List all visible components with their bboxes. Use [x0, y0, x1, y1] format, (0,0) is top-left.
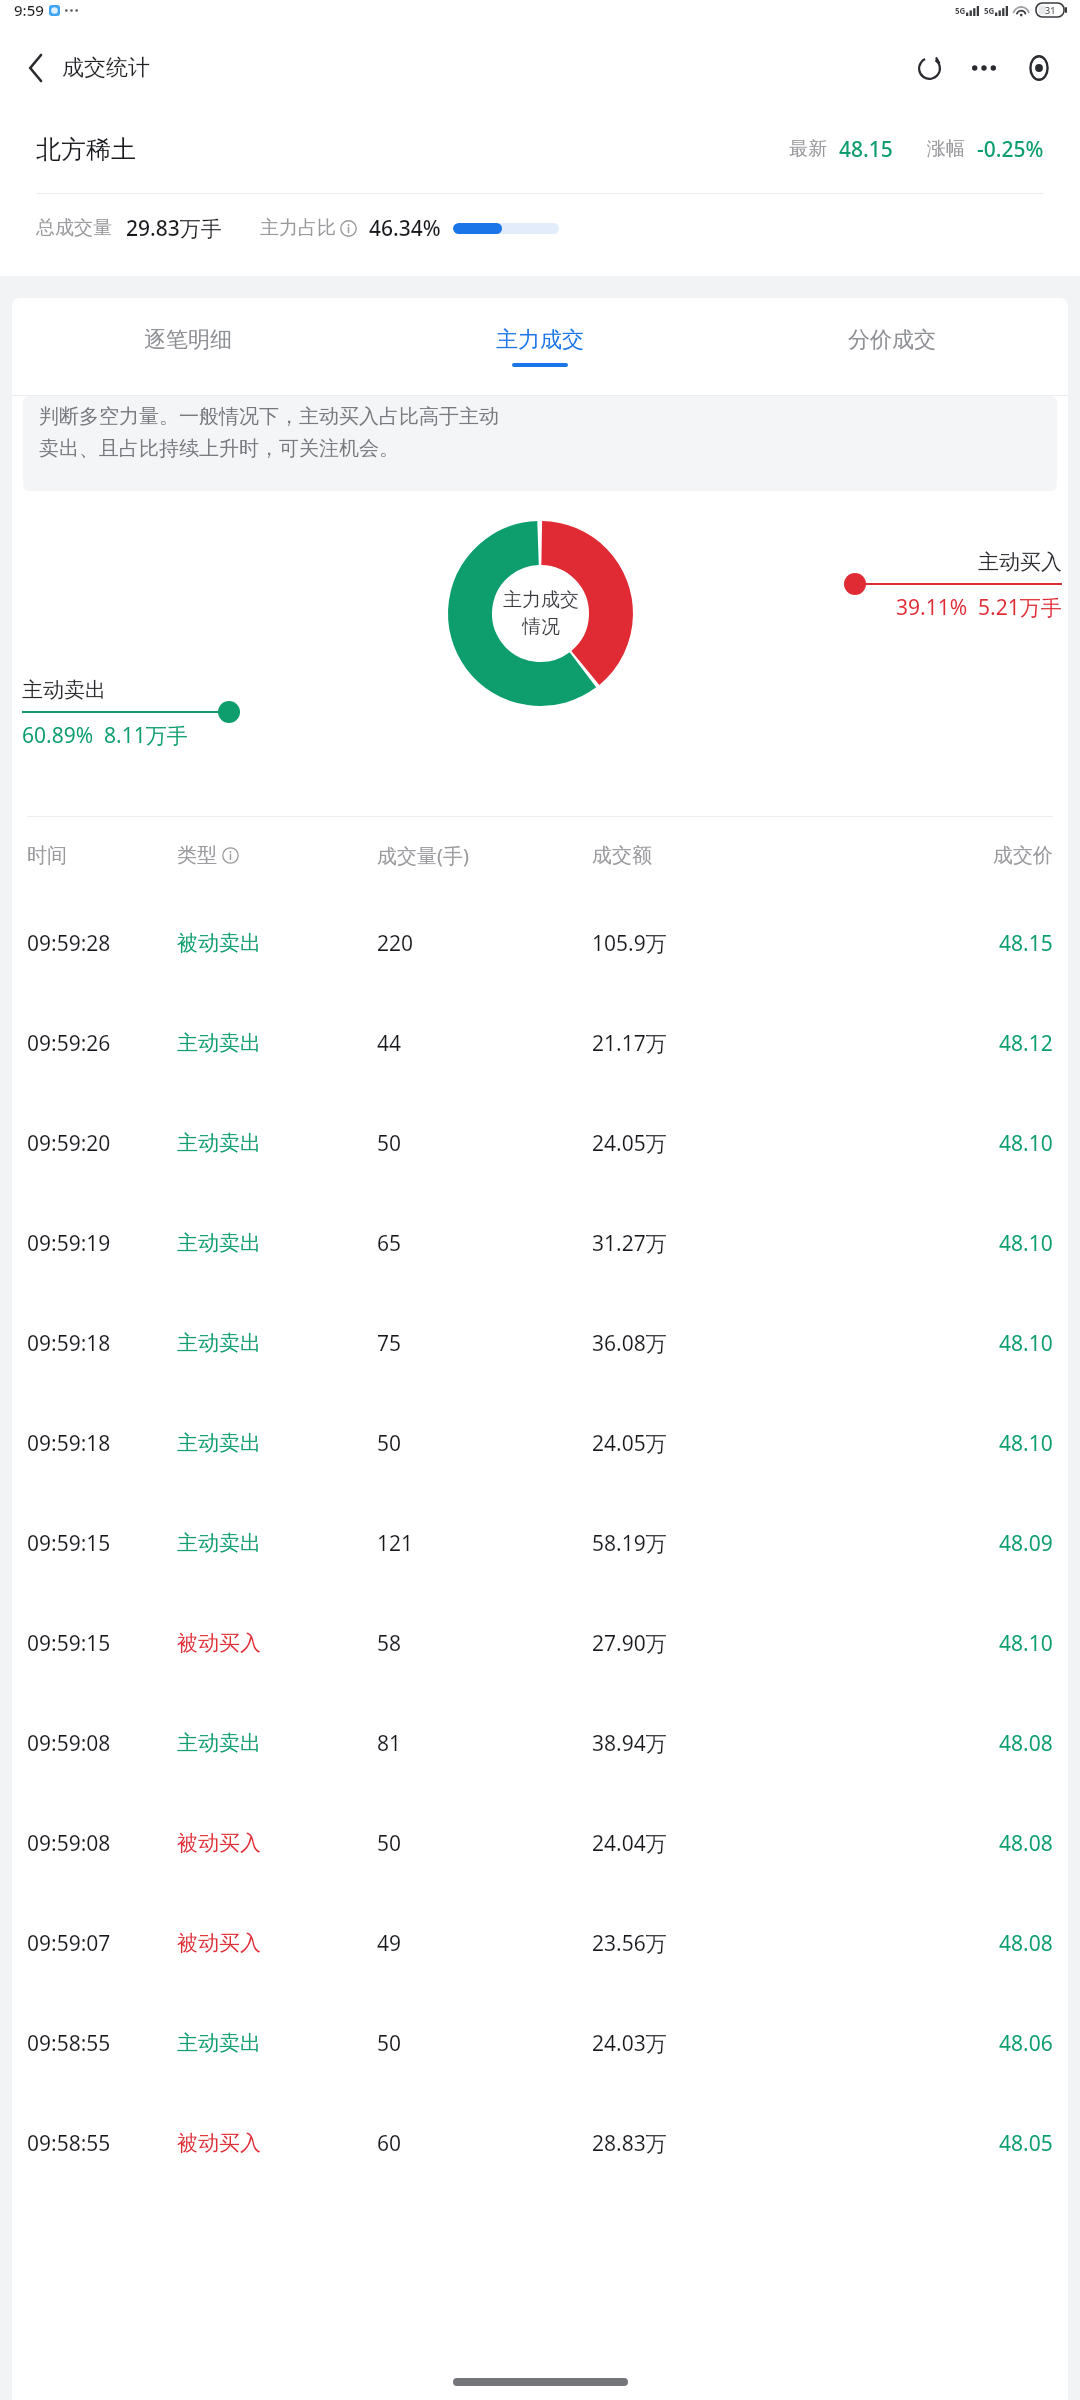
button[interactable]: Refresh: [908, 47, 950, 89]
staticText: 38.94万: [592, 1729, 667, 1758]
staticText: 50: [377, 2029, 402, 2058]
staticText: 主动卖出: [177, 1430, 261, 1456]
staticText: 39.11% 5.21万手: [896, 593, 1062, 622]
staticText: 时间: [27, 843, 67, 868]
staticText: 成交价: [993, 843, 1053, 868]
button[interactable]: 09:59:18: [12, 1393, 1068, 1493]
staticText: 09:59:15: [27, 1529, 111, 1558]
staticText: 105.9万: [592, 929, 667, 958]
staticText: 09:58:55: [27, 2129, 111, 2158]
staticText: 121: [377, 1529, 414, 1558]
staticText: 9:59: [14, 0, 44, 20]
button[interactable]: 09:59:15: [12, 1593, 1068, 1693]
staticText: 主动卖出: [177, 1330, 261, 1356]
button[interactable]: More options: [964, 48, 1004, 88]
staticText: 50: [377, 1829, 402, 1858]
button[interactable]: 09:59:20: [12, 1093, 1068, 1193]
staticText: 被动买入: [177, 1930, 261, 1956]
button[interactable]: 09:58:55: [12, 2093, 1068, 2193]
staticText: 北方稀土: [36, 134, 136, 165]
staticText: 09:59:26: [27, 1029, 111, 1058]
button[interactable]: 09:59:08: [12, 1693, 1068, 1793]
button[interactable]: 09:59:07: [12, 1893, 1068, 1993]
staticText: 09:58:55: [27, 2029, 111, 2058]
staticText: 48.10: [999, 1329, 1053, 1358]
button[interactable]: 主力成交: [364, 298, 716, 395]
button[interactable]: 09:59:19: [12, 1193, 1068, 1293]
staticText: 48.12: [999, 1029, 1053, 1058]
staticText: 75: [377, 1329, 402, 1358]
staticText: 81: [377, 1729, 402, 1758]
staticText: 判断多空力量。一般情况下，主动买入占比高于主动: [39, 404, 499, 429]
staticText: 48.06: [999, 2029, 1053, 2058]
staticText: 24.03万: [592, 2029, 667, 2058]
staticText: 58.19万: [592, 1529, 667, 1558]
staticText: 逐笔明细: [144, 326, 232, 354]
staticText: 48.08: [999, 1929, 1053, 1958]
button[interactable]: Back: [14, 46, 58, 90]
staticText: 48.10: [999, 1129, 1053, 1158]
staticText: 09:59:08: [27, 1829, 111, 1858]
staticText: 主力成交: [496, 326, 584, 354]
button[interactable]: 09:59:08: [12, 1793, 1068, 1893]
button[interactable]: 09:59:18: [12, 1293, 1068, 1393]
staticText: 29.83万手: [126, 214, 222, 243]
staticText: 被动买入: [177, 2130, 261, 2156]
staticText: 情况: [522, 615, 560, 639]
button[interactable]: 分价成交: [716, 298, 1068, 395]
staticText: 09:59:18: [27, 1329, 111, 1358]
staticText: 成交统计: [62, 54, 150, 82]
staticText: 27.90万: [592, 1629, 667, 1658]
staticText: 09:59:15: [27, 1629, 111, 1658]
staticText: 24.05万: [592, 1129, 667, 1158]
button[interactable]: 09:59:26: [12, 993, 1068, 1093]
staticText: 主力占比: [260, 216, 336, 240]
staticText: 46.34%: [369, 214, 441, 243]
staticText: 主动卖出: [177, 1530, 261, 1556]
staticText: 50: [377, 1429, 402, 1458]
staticText: 09:59:08: [27, 1729, 111, 1758]
staticText: 主动卖出: [177, 1230, 261, 1256]
staticText: 44: [377, 1029, 402, 1058]
staticText: 60: [377, 2129, 402, 2158]
staticText: 09:59:18: [27, 1429, 111, 1458]
staticText: 48.08: [999, 1729, 1053, 1758]
button[interactable]: 09:58:55: [12, 1993, 1068, 2093]
staticText: 涨幅: [927, 137, 965, 161]
staticText: 主动卖出: [177, 1030, 261, 1056]
staticText: 最新: [789, 137, 827, 161]
staticText: 48.15: [839, 135, 893, 164]
staticText: 36.08万: [592, 1329, 667, 1358]
staticText: 分价成交: [848, 326, 936, 354]
staticText: 09:59:28: [27, 929, 111, 958]
staticText: 09:59:07: [27, 1929, 111, 1958]
staticText: 主动卖出: [177, 1730, 261, 1756]
staticText: 总成交量: [36, 216, 112, 240]
staticText: 成交量(手): [377, 842, 469, 869]
staticText: 65: [377, 1229, 402, 1258]
staticText: 主动买入: [978, 549, 1062, 575]
staticText: 5G: [984, 5, 995, 16]
staticText: 48.10: [999, 1629, 1053, 1658]
button[interactable]: 09:59:15: [12, 1493, 1068, 1593]
button[interactable]: 09:59:28: [12, 893, 1068, 993]
staticText: 被动卖出: [177, 930, 261, 956]
staticText: 50: [377, 1129, 402, 1158]
staticText: 49: [377, 1929, 402, 1958]
staticText: 48.15: [999, 929, 1053, 958]
staticText: 48.10: [999, 1429, 1053, 1458]
staticText: 24.05万: [592, 1429, 667, 1458]
staticText: 5G: [955, 5, 966, 16]
button[interactable]: 逐笔明细: [12, 298, 364, 395]
staticText: 31: [1045, 4, 1056, 16]
staticText: 60.89% 8.11万手: [22, 721, 188, 750]
staticText: 09:59:20: [27, 1129, 111, 1158]
staticText: 24.04万: [592, 1829, 667, 1858]
staticText: 主动卖出: [177, 2030, 261, 2056]
staticText: 主动卖出: [177, 1130, 261, 1156]
staticText: 48.09: [999, 1529, 1053, 1558]
staticText: -0.25%: [977, 135, 1044, 164]
button[interactable]: Record: [1018, 47, 1060, 89]
staticText: 21.17万: [592, 1029, 667, 1058]
